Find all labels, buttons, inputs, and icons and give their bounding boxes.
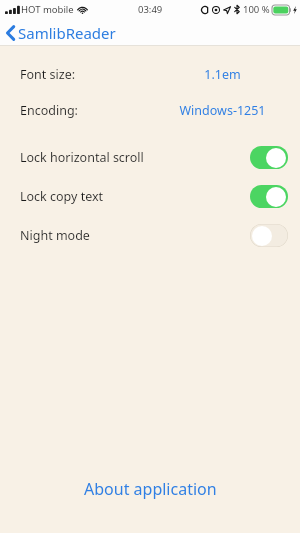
button[interactable]: Night mode (0, 219, 300, 251)
staticText: 1.1em (204, 66, 241, 83)
button[interactable]: Font size: (0, 59, 300, 89)
button[interactable]: Back (6, 23, 116, 43)
staticText: HOT mobile (21, 3, 74, 16)
staticText: Font size: (20, 66, 76, 83)
button[interactable]: About application (0, 467, 300, 511)
other: On (250, 146, 288, 169)
staticText: 03:49 (138, 3, 163, 16)
staticText: SamlibReader (18, 23, 116, 43)
staticText: Encoding: (20, 102, 78, 119)
button[interactable]: Encoding: (0, 95, 300, 125)
staticText: Night mode (20, 227, 90, 244)
staticText: Lock horizontal scroll (20, 149, 144, 166)
staticText: 100 % (243, 3, 270, 16)
other: Back (6, 25, 15, 41)
button[interactable]: Lock horizontal scroll (0, 141, 300, 173)
staticText: About application (84, 478, 217, 500)
staticText: Windows-1251 (179, 102, 266, 119)
other: Off (250, 224, 288, 247)
other: On (250, 185, 288, 208)
staticText: Lock copy text (20, 188, 104, 205)
button[interactable]: Lock copy text (0, 180, 300, 212)
